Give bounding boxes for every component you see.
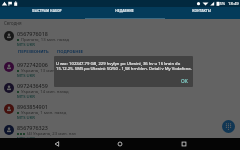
staticText: Сегодня — [4, 20, 22, 26]
staticText: 8963854901 — [17, 103, 48, 110]
staticText: КОНТАКТЫ — [192, 8, 211, 12]
staticText: U вас: 102347.79 GB, 229 hvylyn po Ukrai… — [56, 61, 181, 67]
button[interactable]: ПОДРОБНЕЕ — [56, 49, 85, 55]
staticText: 18:49 — [228, 1, 239, 7]
button[interactable]: 8567976323 — [0, 119, 240, 138]
staticText: 0972742006 — [17, 61, 48, 68]
staticText: 0972436459 — [17, 82, 48, 89]
staticText: ПОДРОБНЕЕ — [57, 49, 84, 55]
staticText: 15.12.25. SMS po Ukraini: 50/50 - 1,58 h… — [56, 66, 192, 72]
staticText: MTS UKR — [17, 115, 35, 121]
staticText: (4) Украина, 23 мин. наз — [27, 131, 76, 137]
button[interactable]: ПЕРЕЗВОНИТЬ — [17, 49, 50, 55]
staticText: 0567976018 — [17, 30, 48, 37]
staticText: MTS UKR — [17, 42, 35, 48]
staticText: MTS UKR — [17, 136, 35, 142]
staticText: MTS UKR — [17, 94, 35, 100]
staticText: НЕДАВНИЕ — [115, 8, 134, 12]
button[interactable]: Dialpad — [222, 120, 235, 133]
button[interactable]: Home — [113, 138, 127, 150]
button[interactable]: 0567976018 — [0, 27, 240, 56]
button[interactable]: OK — [180, 78, 189, 85]
button[interactable]: Back — [50, 138, 64, 150]
button[interactable]: 8963854901 — [0, 98, 240, 119]
button[interactable]: КОНТАКТЫ — [163, 7, 240, 19]
staticText: Украина, 14 мин. назад — [21, 89, 69, 95]
staticText: 85% — [217, 1, 226, 7]
button[interactable]: НЕДАВНИЕ — [86, 7, 163, 19]
staticText: MTS UKR — [17, 73, 35, 79]
staticText: ПЕРЕЗВОНИТЬ — [18, 49, 49, 55]
staticText: Украина, 13 мин. назад — [21, 68, 69, 74]
staticText: OK — [181, 78, 188, 85]
button[interactable]: 0972742006 — [0, 56, 240, 77]
staticText: Принято, 13 мин. назад — [21, 37, 70, 43]
staticText: 8567976323 — [17, 124, 48, 131]
staticText: Украина, 1 мин. назад — [21, 110, 67, 116]
button[interactable]: БЫСТРЫЙ НАБОР — [8, 7, 86, 19]
button[interactable]: 0972436459 — [0, 77, 240, 98]
button[interactable]: Recent apps — [177, 138, 191, 150]
staticText: БЫСТРЫЙ НАБОР — [32, 8, 62, 12]
